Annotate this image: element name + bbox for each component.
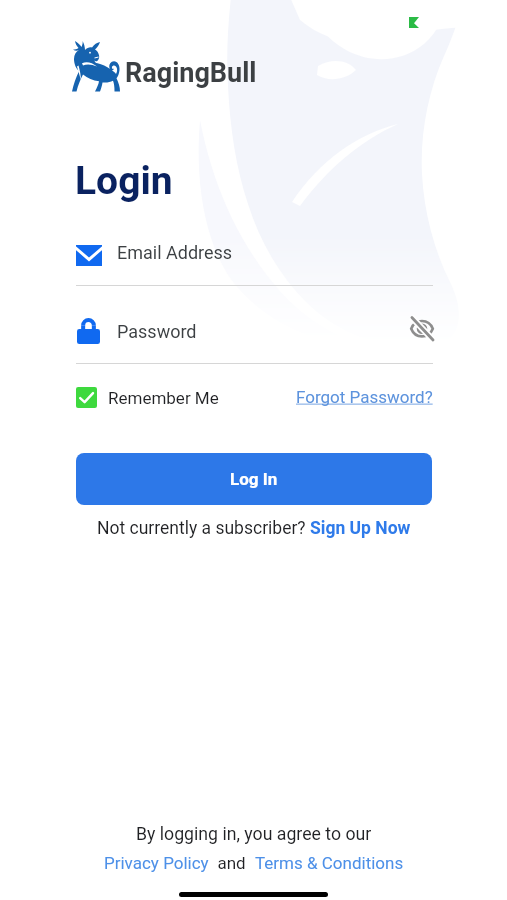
- staticText: By logging in, you agree to our: [136, 824, 372, 845]
- staticText: Log In: [230, 469, 278, 489]
- staticText: Email Address: [117, 242, 233, 263]
- staticText: and: [209, 853, 255, 873]
- staticText: RagingBull: [125, 57, 257, 89]
- staticText: Login: [75, 158, 173, 204]
- staticText: Remember Me: [108, 388, 219, 408]
- button[interactable]: Terms & Conditions: [255, 853, 404, 873]
- button[interactable]: Password: [117, 321, 197, 342]
- button[interactable]: Forgot Password?: [296, 387, 433, 407]
- button[interactable]: Log In: [76, 453, 432, 505]
- staticText: Not currently a subscriber?: [97, 518, 310, 539]
- staticText: Forgot Password?: [296, 387, 433, 407]
- button[interactable]: Show password: [408, 314, 436, 342]
- button[interactable]: Status indicator: [409, 17, 419, 28]
- staticText: Password: [117, 321, 197, 342]
- button[interactable]: Sign Up Now: [310, 518, 411, 539]
- button[interactable]: Privacy Policy: [104, 853, 209, 873]
- button[interactable]: Email Address: [76, 240, 433, 286]
- staticText: Privacy Policy: [104, 853, 209, 873]
- staticText: Sign Up Now: [310, 518, 411, 539]
- staticText: Terms & Conditions: [255, 853, 404, 873]
- button[interactable]: Remember Me: [76, 387, 219, 408]
